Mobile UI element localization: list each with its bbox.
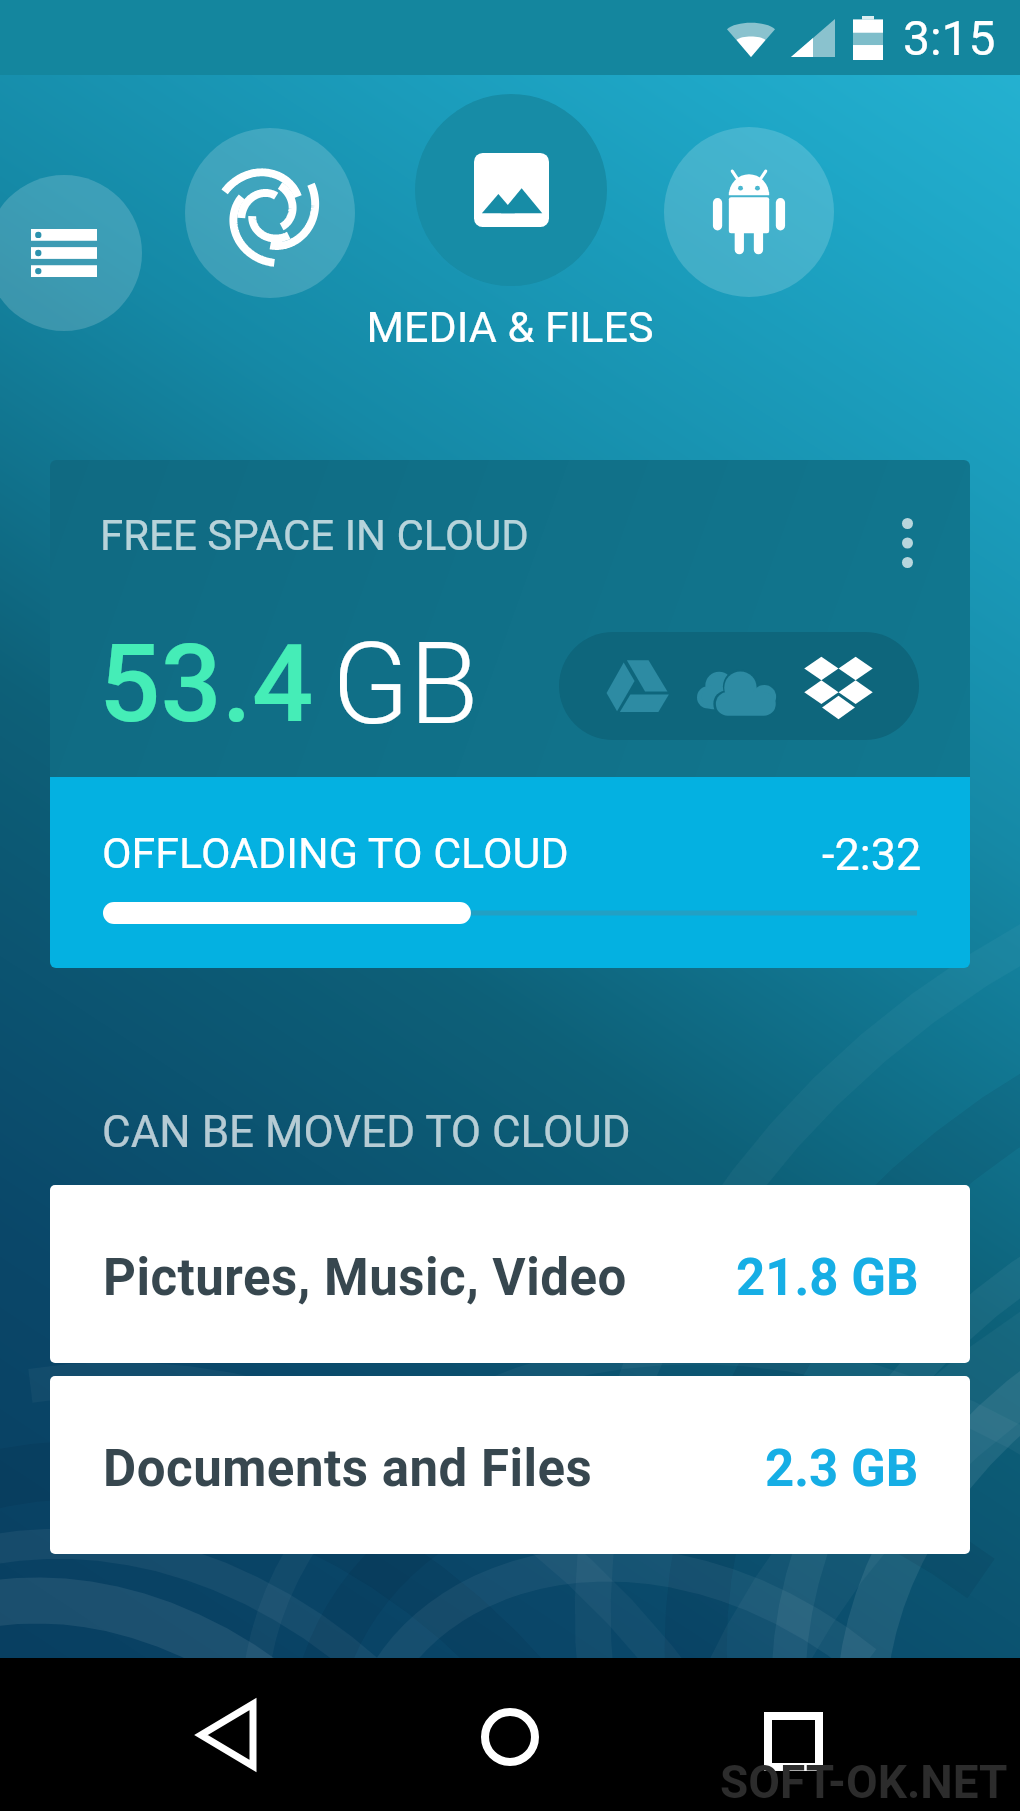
button[interactable]: Recents bbox=[768, 1716, 819, 1767]
staticText: 53.4 bbox=[99, 621, 314, 748]
button[interactable]: Pictures, Music, Video bbox=[50, 1185, 970, 1363]
staticText: Documents and Files bbox=[103, 1439, 593, 1499]
button[interactable]: Media and files bbox=[415, 94, 607, 286]
button[interactable]: Home bbox=[481, 1708, 539, 1766]
button[interactable]: Documents and Files bbox=[50, 1376, 970, 1554]
button[interactable]: Cleaner bbox=[185, 128, 355, 298]
staticText: FREE SPACE IN CLOUD bbox=[100, 511, 529, 560]
staticText: GB bbox=[332, 618, 479, 750]
staticText: OFFLOADING TO CLOUD bbox=[102, 828, 569, 878]
staticText: Pictures, Music, Video bbox=[103, 1248, 627, 1308]
button[interactable]: Storage bbox=[0, 175, 142, 331]
staticText: 3:15 bbox=[903, 10, 996, 66]
button[interactable] bbox=[559, 632, 919, 740]
button[interactable]: OFFLOADING TO CLOUD bbox=[50, 777, 970, 968]
staticText: MEDIA & FILES bbox=[0, 302, 1020, 352]
button[interactable]: More options bbox=[902, 518, 913, 568]
staticText: 2.3 GB bbox=[765, 1439, 919, 1499]
staticText: CAN BE MOVED TO CLOUD bbox=[102, 1106, 631, 1158]
button[interactable]: Back bbox=[198, 1701, 256, 1769]
staticText: 21.8 GB bbox=[736, 1248, 919, 1308]
staticText: -2:32 bbox=[822, 828, 922, 881]
button[interactable]: Apps bbox=[664, 127, 834, 297]
staticText: SOFT-OK.NET bbox=[720, 1755, 1008, 1809]
button[interactable]: FREE SPACE IN CLOUD bbox=[50, 460, 970, 777]
